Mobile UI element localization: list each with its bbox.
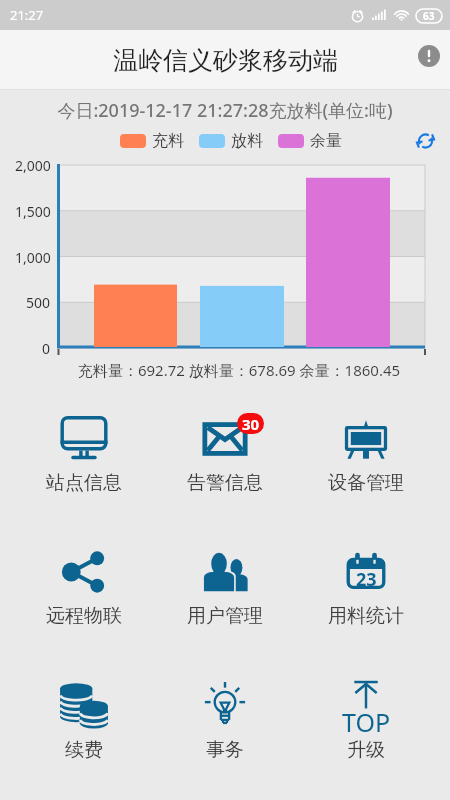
staticText: 充料量：692.72 放料量：678.69 余量：1860.45 [14, 360, 450, 380]
button[interactable]: TOP [306, 679, 426, 762]
staticText: 续费 [65, 738, 103, 762]
button[interactable]: 23 [306, 546, 426, 628]
staticText: 远程物联 [46, 604, 122, 628]
staticText: 充料 [152, 131, 184, 151]
staticText: 升级 [347, 738, 385, 762]
staticText: 21:27 [10, 6, 44, 24]
staticText: 站点信息 [46, 471, 122, 495]
button[interactable]: Refresh [410, 130, 440, 152]
staticText: 余量 [310, 131, 342, 151]
staticText: 设备管理 [328, 471, 404, 495]
button[interactable]: Info [410, 37, 448, 75]
button[interactable]: 事务 [165, 679, 285, 762]
staticText: 温岭信义砂浆移动端 [113, 45, 338, 76]
staticText: 0 [42, 339, 51, 358]
staticText: 告警信息 [187, 471, 263, 495]
staticText: TOP [342, 705, 391, 739]
staticText: 今日:2019-12-17 21:27:28充放料(单位:吨) [0, 98, 450, 123]
button[interactable]: 设备管理 [306, 413, 426, 495]
staticText: 事务 [206, 738, 244, 762]
staticText: 23 [356, 567, 377, 592]
staticText: 1,500 [15, 202, 51, 221]
button[interactable]: 续费 [24, 679, 144, 762]
button[interactable]: 用户管理 [165, 546, 285, 628]
staticText: 1,000 [15, 248, 51, 267]
button[interactable]: 远程物联 [24, 546, 144, 628]
staticText: 放料 [231, 131, 263, 151]
staticText: 30 [242, 414, 260, 434]
staticText: 500 [26, 293, 51, 312]
button[interactable]: 30 [165, 413, 285, 495]
button[interactable]: 站点信息 [24, 413, 144, 495]
staticText: 用户管理 [187, 604, 263, 628]
staticText: 63 [423, 9, 435, 23]
staticText: 用料统计 [328, 604, 404, 628]
staticText: 2,000 [15, 156, 51, 175]
